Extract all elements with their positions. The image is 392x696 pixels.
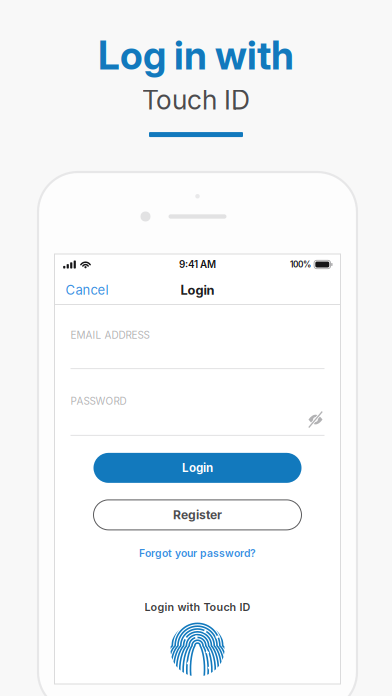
button[interactable]: Cancel — [62, 277, 111, 303]
staticText: Touch ID — [142, 84, 250, 116]
staticText: PASSWORD — [70, 395, 126, 407]
staticText: Register — [173, 507, 222, 522]
staticText: Forgot your password? — [139, 547, 256, 559]
staticText: 100% — [290, 259, 311, 269]
button[interactable]: Forgot your password? — [70, 544, 324, 562]
button[interactable]: Show password — [306, 413, 324, 426]
staticText: Login — [180, 282, 214, 298]
button[interactable]: Register — [93, 500, 301, 530]
staticText: Login with Touch ID — [144, 600, 250, 614]
button[interactable]: Login with Touch ID — [70, 622, 324, 676]
staticText: Login — [182, 461, 213, 475]
button[interactable]: Login — [93, 453, 301, 483]
staticText: Cancel — [65, 282, 108, 298]
staticText: Log in with — [98, 32, 294, 79]
staticText: EMAIL ADDRESS — [70, 329, 149, 341]
staticText: 9:41 AM — [179, 258, 216, 270]
